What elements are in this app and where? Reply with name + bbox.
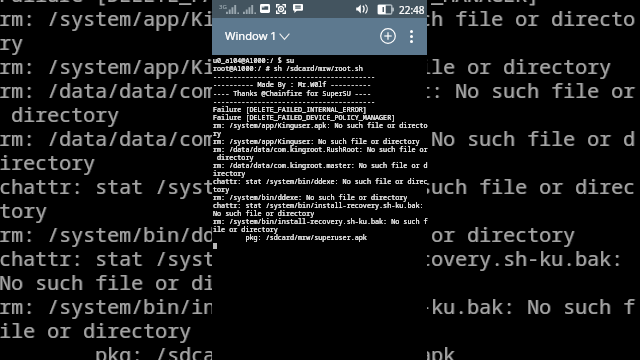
staticText: Failure [DELETE_FAILED_INTERNAL_ERROR] xyxy=(213,105,367,114)
staticText: ry xyxy=(213,129,222,138)
staticText: ---------------------------------------- xyxy=(213,97,376,106)
staticText: directory xyxy=(213,153,254,162)
staticText: chattr: stat /system/bin/install-recover… xyxy=(213,201,424,210)
staticText: chattr: stat /system/bin/ddexe: No such … xyxy=(213,177,428,186)
staticText: 3G xyxy=(219,3,227,11)
staticText: rm: /system/bin/install-recovery.sh-ku.b… xyxy=(0,293,636,320)
staticText: No such file or directory xyxy=(0,269,299,296)
staticText: Failure [DELETE_FAILED_INTERNAL_ERROR] xyxy=(213,105,367,114)
staticText: No such file or directory xyxy=(0,269,300,296)
staticText: chattr: stat /system/bin/install-recover… xyxy=(0,245,623,272)
staticText: directory xyxy=(0,101,119,128)
staticText: rm: /system/app/Kinguser: No such file o… xyxy=(0,53,612,80)
staticText: Failure [DELETE_FAILED_DEVICE_POLICY_MAN… xyxy=(213,113,396,122)
staticText: rm: /data/data/com.kingroot.RushRoot: No… xyxy=(0,77,636,104)
staticText: rm: /system/app/Kinguser: No such file o… xyxy=(213,137,420,146)
staticText: rm: /system/bin/ddexe: No such file or d… xyxy=(213,193,408,202)
staticText: chattr: stat /system/bin/install-recover… xyxy=(0,245,624,272)
staticText: No such file or directory xyxy=(213,209,315,218)
staticText: rm: /data/data/com.kingroot.RushRoot: No… xyxy=(0,77,635,104)
staticText: tory xyxy=(213,185,230,194)
staticText: rm: /system/bin/install-recovery.sh-ku.b… xyxy=(0,293,635,320)
button[interactable]: More options xyxy=(399,24,424,49)
staticText: 22:48 xyxy=(399,3,425,17)
staticText: rm: /data/data/com.kingroot.RushRoot: No… xyxy=(213,145,428,154)
staticText: ---------------------------------------- xyxy=(213,97,376,106)
staticText: rm: /system/bin/install-recovery.sh-ku.b… xyxy=(213,217,428,226)
staticText: No such file or directory xyxy=(213,209,315,218)
staticText: u0_a104@A1000:/ $ su xyxy=(213,56,295,65)
staticText: ---------- Made By : Mr.W0lf ---------- xyxy=(213,80,371,89)
staticText: Failure [DELETE_FAILED_DEVICE_POLICY_MAN… xyxy=(0,0,539,8)
staticText: Failure [DELETE_FAILED_DEVICE_POLICY_MAN… xyxy=(213,113,396,122)
staticText: chattr: stat /system/bin/ddexe: No such … xyxy=(0,173,636,200)
staticText: Failure [DELETE_FAILED_DEVICE_POLICY_MAN… xyxy=(0,0,540,8)
staticText: rm: /data/data/com.kingroot.master: No s… xyxy=(0,125,635,152)
staticText: rm: /system/bin/install-recovery.sh-ku.b… xyxy=(213,217,428,226)
staticText: chattr: stat /system/bin/install-recover… xyxy=(213,201,424,210)
staticText: ile or directory xyxy=(213,225,278,234)
staticText: tory xyxy=(213,185,230,194)
staticText: pkg: /sdcard/mrw/superuser.apk xyxy=(213,233,367,242)
staticText: ---------------------------------------- xyxy=(213,72,376,81)
staticText: rm: /system/app/Kinguser.apk: No such fi… xyxy=(213,121,428,130)
staticText: rm: /system/app/Kinguser: No such file o… xyxy=(213,137,420,146)
staticText: rm: /system/bin/ddexe: No such file or d… xyxy=(213,193,408,202)
staticText: u0_a104@A1000:/ $ su xyxy=(213,56,295,65)
button[interactable]: Window 1 xyxy=(218,19,308,50)
staticText: irectory xyxy=(0,149,96,176)
staticText: rm: /system/bin/ddexe: No such file or d… xyxy=(0,221,575,248)
staticText: root@A1000:/ # sh /sdcard/mrw/root.sh xyxy=(213,64,363,73)
staticText: ---- Thanks @Chainfire for SuperSU ---- xyxy=(213,89,371,98)
staticText: irectory xyxy=(213,169,246,178)
staticText: rm: /data/data/com.kingroot.RushRoot: No… xyxy=(213,145,428,154)
staticText: ry xyxy=(213,129,222,138)
staticText: directory xyxy=(0,101,120,128)
staticText: ile or directory xyxy=(0,317,192,344)
staticText: rm: /data/data/com.kingroot.master: No s… xyxy=(213,161,428,170)
staticText: pkg: /sdcard/mrw/superuser.apk xyxy=(213,233,367,242)
staticText: directory xyxy=(213,153,254,162)
staticText: tory xyxy=(0,197,48,224)
staticText: rm: /data/data/com.kingroot.master: No s… xyxy=(0,125,636,152)
staticText: rm: /system/app/Kinguser.apk: No such fi… xyxy=(0,5,636,32)
staticText: ile or directory xyxy=(0,317,191,344)
staticText: rm: /data/data/com.kingroot.master: No s… xyxy=(213,161,428,170)
button[interactable]: New window xyxy=(373,21,402,50)
staticText: ile or directory xyxy=(213,225,278,234)
staticText: Window 1 xyxy=(225,28,277,43)
staticText: tory xyxy=(0,197,47,224)
staticText: ---------- Made By : Mr.W0lf ---------- xyxy=(213,80,371,89)
staticText: ry xyxy=(0,29,23,56)
staticText: chattr: stat /system/bin/ddexe: No such … xyxy=(0,173,635,200)
button[interactable]: u0_a104@A1000:/ $ su xyxy=(212,55,427,360)
staticText: irectory xyxy=(0,149,95,176)
staticText: ry xyxy=(0,29,24,56)
staticText: rm: /system/app/Kinguser: No such file o… xyxy=(0,53,611,80)
staticText: pkg: /sdcard/mrw/superuser.apk xyxy=(0,341,455,360)
staticText: chattr: stat /system/bin/ddexe: No such … xyxy=(213,177,428,186)
staticText: ---- Thanks @Chainfire for SuperSU ---- xyxy=(213,89,371,98)
staticText: rm: /system/bin/ddexe: No such file or d… xyxy=(0,221,576,248)
staticText: ---------------------------------------- xyxy=(213,72,376,81)
staticText: irectory xyxy=(213,169,246,178)
staticText: root@A1000:/ # sh /sdcard/mrw/root.sh xyxy=(213,64,363,73)
staticText: rm: /system/app/Kinguser.apk: No such fi… xyxy=(213,121,428,130)
staticText: pkg: /sdcard/mrw/superuser.apk xyxy=(0,341,456,360)
staticText: rm: /system/app/Kinguser.apk: No such fi… xyxy=(0,5,635,32)
